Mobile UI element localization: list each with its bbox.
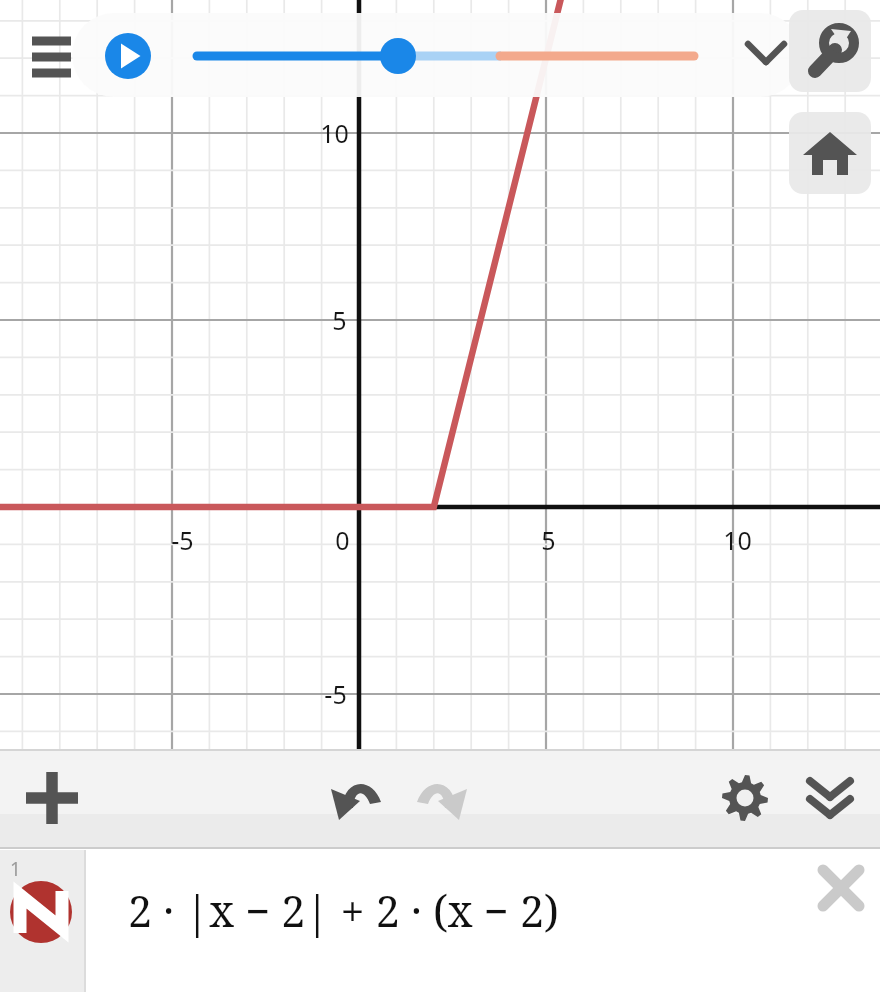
button[interactable]: Graph settings [789, 10, 871, 92]
staticText: 5 [541, 523, 556, 557]
staticText: 10 [320, 116, 349, 150]
button[interactable]: Menu [16, 24, 88, 90]
staticText: -5 [324, 677, 347, 711]
staticText: 1 [10, 856, 21, 882]
button[interactable]: Toggle graph visibility [0, 850, 85, 992]
button[interactable]: Parameter slider [188, 34, 702, 78]
button[interactable]: Settings [709, 762, 781, 834]
button[interactable]: Collapse toolbar [736, 22, 796, 86]
button[interactable]: Add expression [16, 762, 88, 834]
button[interactable]: Home view [789, 112, 871, 194]
staticText: 2 · |x − 2| + 2 · (x − 2) [128, 881, 559, 940]
staticText: 10 [723, 523, 752, 557]
button[interactable]: Redo [404, 762, 476, 834]
staticText: 5 [332, 303, 347, 337]
button[interactable]: Hide expression list [794, 762, 866, 834]
button[interactable]: Delete expression [806, 853, 876, 923]
button[interactable]: Undo [322, 762, 394, 834]
button[interactable] [85, 850, 803, 992]
staticText: 0 [335, 523, 350, 557]
staticText: -5 [171, 523, 194, 557]
button[interactable]: Play animation [102, 30, 154, 82]
